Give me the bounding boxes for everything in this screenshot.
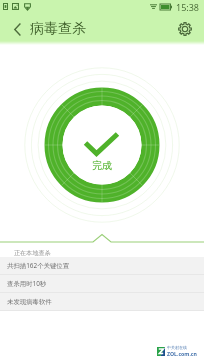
button[interactable]: 共扫描162个关键位置 xyxy=(0,257,204,275)
staticText: 共扫描162个关键位置 xyxy=(7,261,70,270)
staticText: 完成 xyxy=(92,159,112,172)
staticText: 15:38 xyxy=(176,1,200,13)
staticText: 未发现病毒软件 xyxy=(7,298,52,306)
staticText: 正在本地查杀 xyxy=(14,249,51,257)
staticText: ZOL.com.cn xyxy=(167,350,197,357)
button[interactable]: 未发现病毒软件 xyxy=(0,293,204,311)
staticText: 查杀用时10秒 xyxy=(7,279,47,288)
staticText: 中关村在线 xyxy=(167,345,187,350)
button[interactable]: Back xyxy=(0,14,30,44)
button[interactable]: 查杀用时10秒 xyxy=(0,275,204,293)
staticText: 病毒查杀 xyxy=(30,20,86,38)
button[interactable]: Settings xyxy=(168,14,202,44)
